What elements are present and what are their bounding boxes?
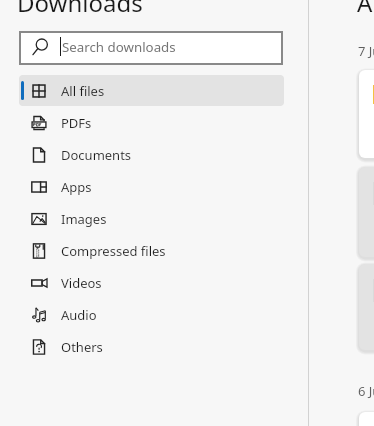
staticText: 6 July	[358, 382, 374, 400]
button[interactable]: Compressed files	[19, 235, 284, 266]
staticText: Images	[61, 210, 107, 228]
staticText: Compressed files	[61, 242, 166, 260]
staticText: Documents	[61, 146, 132, 164]
button[interactable]: Documents	[19, 139, 284, 170]
staticText: 7 July	[358, 42, 374, 60]
staticText: PDFs	[61, 114, 92, 132]
staticText: Apps	[61, 178, 92, 196]
button[interactable]: Images	[19, 203, 284, 234]
button[interactable]: Others	[19, 331, 284, 362]
staticText: Videos	[61, 274, 102, 292]
button[interactable]: Audio	[19, 299, 284, 330]
button[interactable]: Videos	[19, 267, 284, 298]
staticText: August	[357, 0, 374, 19]
button[interactable]: All files	[19, 75, 284, 106]
button[interactable]: Search downloads	[19, 31, 283, 65]
button[interactable]: Apps	[19, 171, 284, 202]
button[interactable]	[359, 70, 374, 158]
button[interactable]	[359, 412, 374, 426]
staticText: Audio	[61, 306, 97, 324]
button[interactable]: PDFs	[19, 107, 284, 138]
staticText: Others	[61, 338, 103, 356]
staticText: Downloads	[17, 0, 143, 19]
staticText: Search downloads	[62, 38, 176, 56]
staticText: All files	[61, 82, 105, 100]
